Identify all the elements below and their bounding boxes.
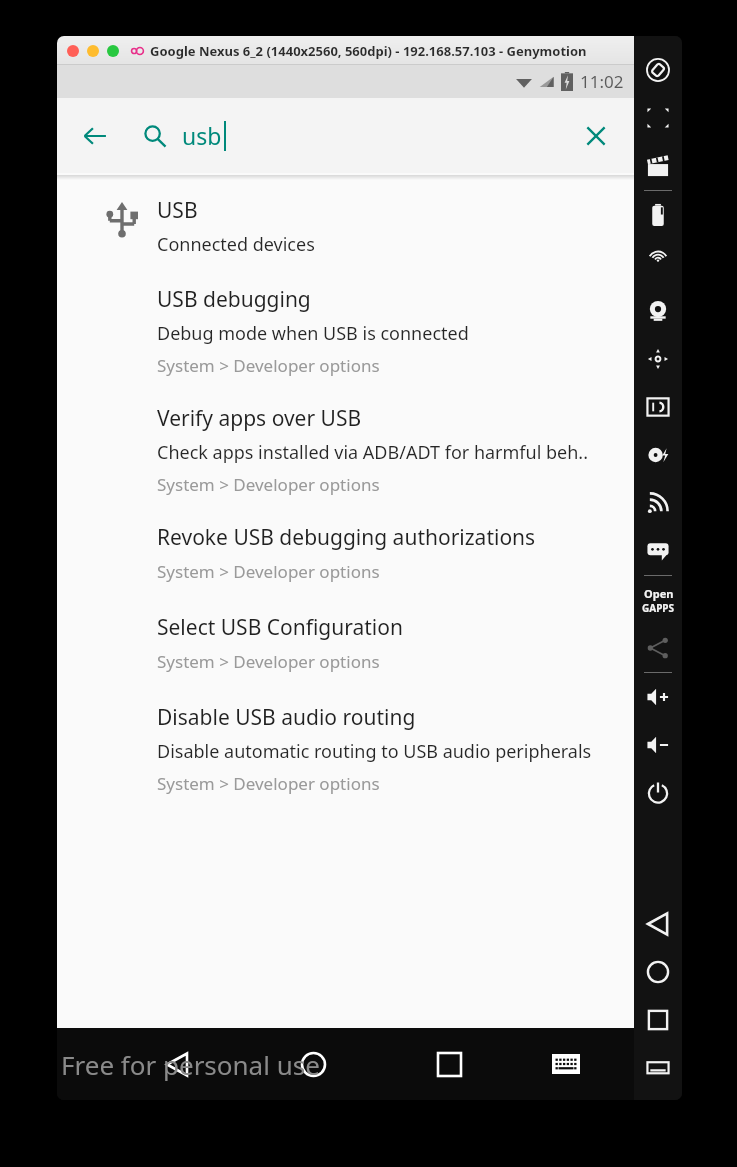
button[interactable]: Battery [634,191,682,239]
button[interactable]: Power [634,769,682,817]
staticText: Check apps installed via ADB/ADT for har… [157,440,589,465]
staticText: System > Developer options [157,560,380,583]
button[interactable]: Camera [634,287,682,335]
staticText: USB [157,196,198,225]
button[interactable]: Back [634,900,682,948]
button[interactable]: Screen capture [634,142,682,190]
button[interactable]: Scale 1:1 [634,94,682,142]
staticText: System > Developer options [157,473,380,496]
staticText: 11:02 [580,70,624,93]
button[interactable]: Clear search [568,108,624,164]
button[interactable]: GPS [634,239,682,287]
button[interactable]: Identifiers [634,383,682,431]
staticText: System > Developer options [157,772,380,795]
button[interactable]: Navigate up [67,108,123,164]
staticText: System > Developer options [157,354,380,377]
button[interactable]: Minimize [87,45,99,57]
staticText: usb [182,120,222,151]
button[interactable]: D-pad [634,335,682,383]
button[interactable]: Share [634,624,682,672]
staticText: Revoke USB debugging authorizations [157,523,536,552]
button[interactable]: Select USB Configuration [57,611,634,673]
button[interactable]: Volume up [634,673,682,721]
button[interactable]: Home [284,1035,342,1093]
button[interactable]: USB [57,194,634,257]
button[interactable]: Keyboard [537,1035,595,1093]
button[interactable]: Disable USB audio routing [57,701,634,795]
staticText: Google Nexus 6_2 (1440x2560, 560dpi) - 1… [150,42,587,60]
staticText: Select USB Configuration [157,613,403,642]
button[interactable]: Messaging [634,527,682,575]
button[interactable]: Back [148,1035,206,1093]
staticText: USB debugging [157,285,311,314]
button[interactable]: Zoom [107,45,119,57]
staticText: Disable automatic routing to USB audio p… [157,739,592,764]
button[interactable]: Home [634,948,682,996]
button[interactable]: Menu [634,1044,682,1092]
button[interactable]: Recent apps [634,996,682,1044]
button[interactable]: Rotate [634,46,682,94]
button[interactable]: Open GApps [634,576,682,624]
button[interactable]: Recent apps [420,1035,478,1093]
staticText: Verify apps over USB [157,404,362,433]
staticText: Disable USB audio routing [157,703,416,732]
button[interactable]: Revoke USB debugging authorizations [57,521,634,583]
button[interactable]: Disk IO [634,431,682,479]
staticText: Open [644,586,674,601]
button[interactable]: Volume down [634,721,682,769]
staticText: System > Developer options [157,650,380,673]
staticText: Debug mode when USB is connected [157,321,469,346]
button[interactable]: USB debugging [57,283,634,377]
staticText: Free for personal use [61,1047,320,1082]
button[interactable]: Verify apps over USB [57,402,634,496]
staticText: Connected devices [157,232,315,257]
staticText: GAPPS [642,601,675,615]
button[interactable]: Network [634,479,682,527]
button[interactable]: Close [67,45,79,57]
